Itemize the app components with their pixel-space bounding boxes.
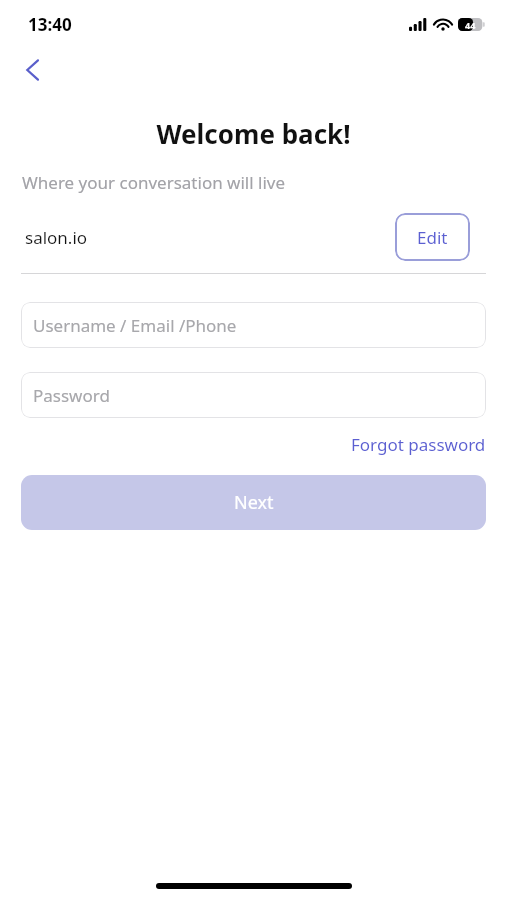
button[interactable]: Edit <box>395 213 470 261</box>
button[interactable]: Password <box>21 372 486 418</box>
staticText: Username / Email /Phone <box>33 314 237 337</box>
button[interactable]: Username / Email /Phone <box>21 302 486 348</box>
button[interactable]: Next <box>21 475 486 530</box>
button[interactable]: Forgot password <box>351 431 486 458</box>
staticText: Forgot password <box>351 433 486 456</box>
staticText: Welcome back! <box>0 116 507 151</box>
staticText: Password <box>33 384 110 407</box>
staticText: salon.io <box>25 226 88 249</box>
button[interactable]: Back <box>10 48 54 92</box>
staticText: 13:40 <box>28 13 72 36</box>
staticText: 44 <box>465 19 476 31</box>
staticText: Where your conversation will live <box>22 171 286 194</box>
staticText: Edit <box>417 226 448 249</box>
staticText: Next <box>234 490 274 515</box>
